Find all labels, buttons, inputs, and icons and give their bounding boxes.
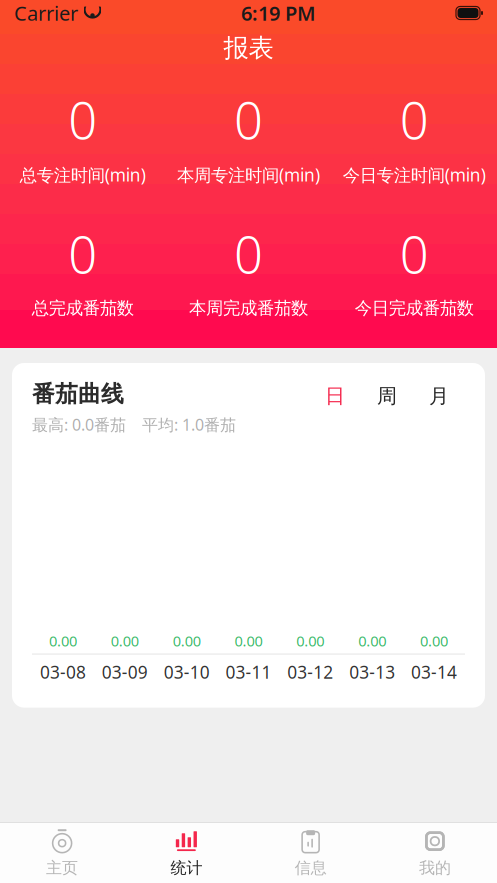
staticText: 月 bbox=[429, 384, 449, 408]
staticText: 03-09 bbox=[102, 661, 148, 684]
button[interactable]: 统计 bbox=[124, 823, 248, 883]
staticText: 0 bbox=[68, 220, 97, 288]
staticText: 0 bbox=[400, 220, 429, 288]
staticText: 03-11 bbox=[225, 661, 271, 684]
staticText: 周 bbox=[377, 384, 397, 408]
staticText: 03-14 bbox=[411, 661, 457, 684]
button[interactable]: 我的 bbox=[373, 823, 497, 883]
staticText: 03-12 bbox=[287, 661, 333, 684]
staticText: 最高: 0.0番茄 bbox=[32, 414, 126, 435]
staticText: 0 bbox=[400, 86, 429, 153]
staticText: 统计 bbox=[170, 858, 202, 878]
staticText: 0.00 bbox=[173, 631, 201, 651]
staticText: 6:19 PM bbox=[241, 0, 316, 26]
staticText: 0.00 bbox=[358, 631, 386, 651]
staticText: 03-10 bbox=[164, 661, 210, 684]
staticText: 0 bbox=[234, 220, 263, 288]
staticText: 本周专注时间(min) bbox=[177, 163, 320, 186]
staticText: 03-08 bbox=[40, 661, 86, 684]
staticText: 本周完成番茄数 bbox=[189, 298, 308, 319]
staticText: 今日完成番茄数 bbox=[355, 298, 474, 319]
staticText: 0.00 bbox=[420, 631, 448, 651]
staticText: 今日专注时间(min) bbox=[343, 163, 486, 186]
staticText: 平均: 1.0番茄 bbox=[142, 414, 236, 435]
button[interactable]: 主页 bbox=[0, 823, 124, 883]
staticText: 日 bbox=[325, 384, 345, 408]
staticText: 0 bbox=[68, 86, 97, 153]
staticText: 番茄曲线 bbox=[32, 380, 124, 408]
button[interactable]: 月 bbox=[413, 382, 465, 410]
staticText: 总完成番茄数 bbox=[32, 298, 134, 319]
staticText: 总专注时间(min) bbox=[20, 163, 146, 186]
staticText: 0 bbox=[234, 86, 263, 153]
staticText: 0.00 bbox=[49, 631, 77, 651]
button[interactable]: 日 bbox=[309, 382, 361, 410]
staticText: 主页 bbox=[46, 858, 78, 878]
staticText: 03-13 bbox=[349, 661, 395, 684]
staticText: 报表 bbox=[223, 32, 273, 63]
staticText: 0.00 bbox=[296, 631, 324, 651]
staticText: 0.00 bbox=[111, 631, 139, 651]
staticText: 我的 bbox=[419, 858, 451, 878]
staticText: 信息 bbox=[295, 858, 327, 878]
staticText: Carrier bbox=[14, 0, 78, 26]
button[interactable]: 周 bbox=[361, 382, 413, 410]
staticText: 0.00 bbox=[234, 631, 262, 651]
button[interactable]: 信息 bbox=[248, 823, 373, 883]
